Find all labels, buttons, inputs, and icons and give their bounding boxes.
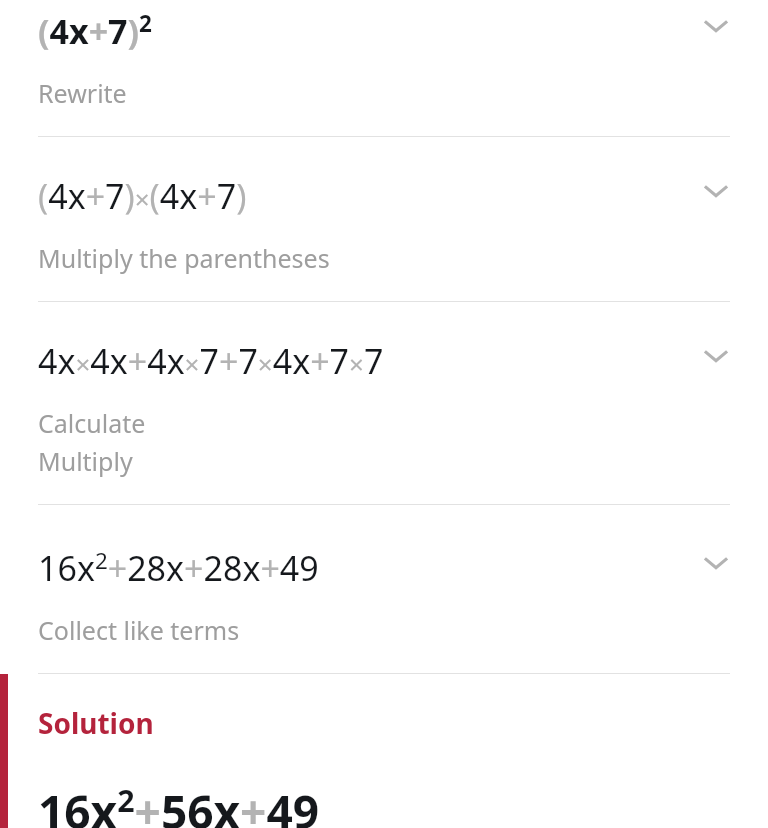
button[interactable]: (4x+7)×(4x+7) [0, 137, 768, 301]
staticText: Multiply [38, 444, 133, 478]
button[interactable]: Expand step [690, 330, 742, 382]
staticText: Solution [38, 704, 154, 742]
button[interactable]: Expand step [690, 0, 742, 52]
staticText: Multiply the parentheses [38, 241, 330, 275]
staticText: (4x+7)2 [38, 8, 152, 54]
staticText: 16x2+28x+28x+49 [38, 545, 319, 591]
staticText: Rewrite [38, 76, 127, 110]
button[interactable]: 4x×4x+4x×7+7×4x+7×7 [0, 302, 768, 504]
button[interactable]: Expand step [690, 537, 742, 589]
staticText: 16x2+56x+49 [38, 780, 320, 828]
button[interactable]: Expand step [690, 165, 742, 217]
staticText: 4x×4x+4x×7+7×4x+7×7 [38, 338, 384, 384]
button[interactable]: (4x+7)2 [0, 0, 768, 136]
staticText: (4x+7)×(4x+7) [38, 173, 247, 219]
button[interactable]: Solution [0, 674, 768, 828]
staticText: Collect like terms [38, 613, 240, 647]
staticText: Calculate [38, 406, 146, 440]
button[interactable]: 16x2+28x+28x+49 [0, 505, 768, 673]
